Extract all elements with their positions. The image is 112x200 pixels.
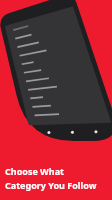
staticText: Category You Follow [5, 179, 97, 191]
staticText: Choose What [5, 165, 64, 177]
